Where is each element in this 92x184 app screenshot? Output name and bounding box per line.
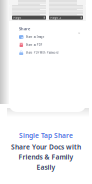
staticText: × [78,30,80,36]
staticText: Share as PDF [26,43,42,47]
staticText: Share Your Docs with [11,142,81,151]
staticText: Single Tap Share [19,131,73,140]
staticText: Page 2 [50,16,61,19]
staticText: Friends & Family [18,153,73,161]
staticText: Share [19,26,30,31]
staticText: Share PDF With Password [26,51,59,54]
button[interactable]: Close [76,30,82,36]
button[interactable]: Share PDF With Password [19,50,80,55]
staticText: Page 1 [13,16,24,19]
button[interactable]: Share as Image [19,35,80,39]
button[interactable]: Share as PDF [19,43,80,47]
staticText: Easily [36,163,55,172]
staticText: Share as Image [26,35,45,39]
